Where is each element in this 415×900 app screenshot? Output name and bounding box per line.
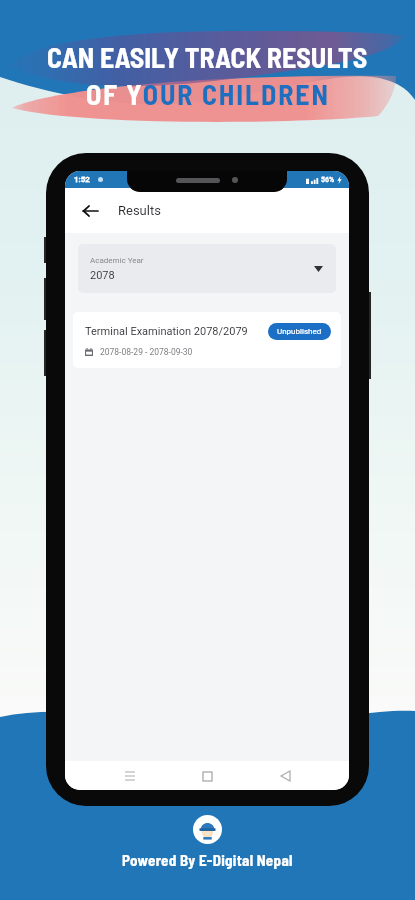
button[interactable]: Home xyxy=(194,763,220,789)
staticText: 56% xyxy=(321,176,335,184)
staticText: Results xyxy=(118,203,161,218)
staticText: OF YOUR CHILDREN xyxy=(86,77,330,111)
button[interactable]: Back xyxy=(78,199,102,223)
staticText: Terminal Examination 2078/2079 xyxy=(85,325,248,338)
staticText: 1:52 xyxy=(74,175,90,184)
staticText: Powered By E-Digital Nepal xyxy=(122,851,293,869)
staticText: Unpublished xyxy=(277,327,322,336)
staticText: Academic Year xyxy=(90,256,144,265)
button[interactable]: Back xyxy=(272,763,298,789)
staticText: CAN EASILY TRACK RESULTS xyxy=(47,40,368,74)
staticText: 2078-08-29 - 2078-09-30 xyxy=(100,347,193,357)
button[interactable]: Unpublished xyxy=(268,323,331,340)
button[interactable]: Recent apps xyxy=(117,763,143,789)
button[interactable]: Terminal Examination 2078/2079 xyxy=(73,312,341,368)
button[interactable]: Academic Year xyxy=(78,244,336,293)
button[interactable]: E-Digital Nepal logo xyxy=(193,815,222,844)
staticText: 2078 xyxy=(90,269,115,282)
